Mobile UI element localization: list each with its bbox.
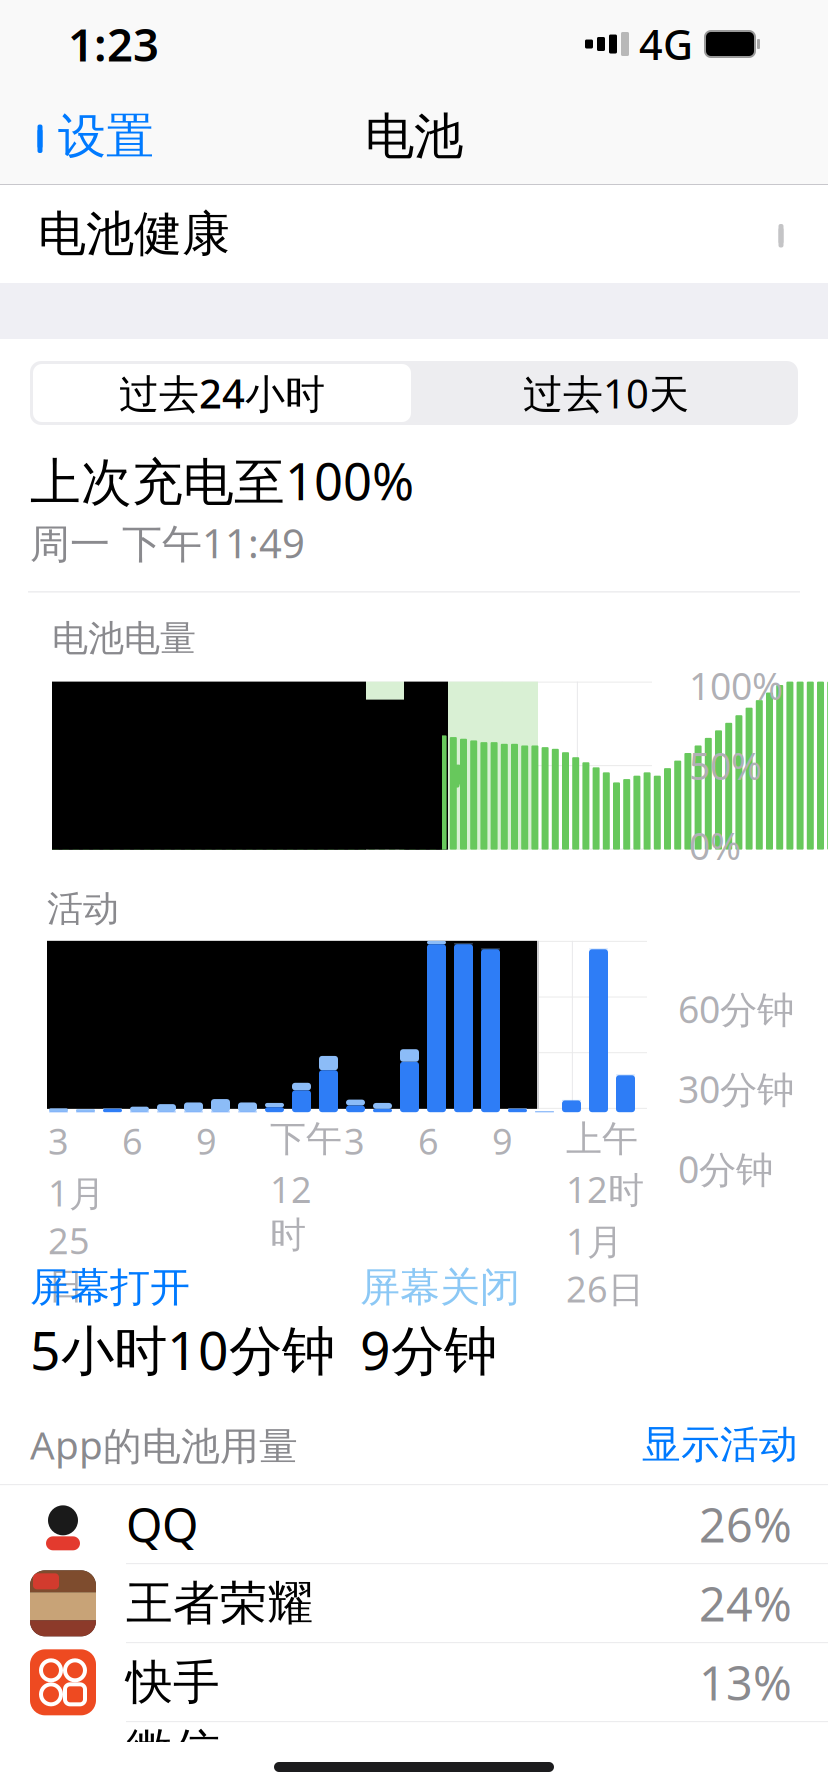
staticText: 0%: [689, 821, 741, 870]
button[interactable]: 过去10天: [414, 364, 798, 422]
button[interactable]: 屏幕关闭: [360, 1263, 520, 1312]
button[interactable]: 电池健康: [0, 185, 828, 283]
button[interactable]: 王者荣耀: [0, 1564, 828, 1642]
staticText: 电池健康: [38, 204, 230, 263]
staticText: 王者荣耀: [126, 1575, 314, 1632]
staticText: 30分钟: [678, 1064, 794, 1114]
staticText: 24%: [699, 1572, 792, 1634]
staticText: 电池电量: [52, 616, 196, 661]
staticText: App的电池用量: [30, 1419, 298, 1470]
staticText: 100%: [689, 661, 783, 710]
staticText: 12时: [270, 1165, 312, 1257]
staticText: 过去24小时: [119, 366, 325, 419]
button[interactable]: 过去24小时: [30, 361, 414, 425]
staticText: 9分钟: [360, 1314, 497, 1385]
staticText: 过去10天: [523, 366, 689, 419]
staticText: 26%: [699, 1493, 792, 1555]
staticText: 周一 下午11:49: [30, 516, 305, 569]
staticText: 屏幕打开: [30, 1263, 190, 1312]
button[interactable]: 快手: [0, 1643, 828, 1721]
staticText: 1月26日: [566, 1217, 644, 1312]
button[interactable]: 微信: [0, 1722, 828, 1792]
staticText: 4G: [639, 17, 693, 71]
staticText: 12时: [566, 1165, 644, 1213]
staticText: 显示活动: [642, 1421, 798, 1468]
button[interactable]: QQ: [0, 1485, 828, 1563]
staticText: 设置: [58, 107, 154, 166]
staticText: 电池: [365, 106, 463, 167]
staticText: 0分钟: [678, 1144, 773, 1194]
button[interactable]: 显示活动: [642, 1421, 798, 1468]
staticText: 下午: [270, 1117, 342, 1161]
staticText: 9: [196, 1117, 217, 1165]
staticText: 5小时10分钟: [30, 1314, 335, 1385]
staticText: 3: [48, 1117, 69, 1165]
staticText: 6: [418, 1117, 439, 1165]
staticText: 1:23: [68, 14, 159, 74]
staticText: 1月25日: [48, 1169, 105, 1308]
staticText: 3: [344, 1117, 365, 1165]
staticText: 活动: [47, 887, 119, 931]
staticText: 上次充电至100%: [30, 447, 414, 514]
button[interactable]: 设置: [10, 97, 174, 176]
staticText: 上午: [566, 1117, 638, 1161]
staticText: 6: [122, 1117, 143, 1165]
staticText: 50%: [689, 741, 762, 790]
staticText: 快手: [126, 1654, 220, 1711]
staticText: 9: [492, 1117, 513, 1165]
staticText: 60分钟: [678, 984, 794, 1034]
staticText: 微信: [126, 1722, 220, 1779]
staticText: 13%: [699, 1651, 792, 1713]
staticText: 屏幕关闭: [360, 1263, 520, 1312]
staticText: QQ: [126, 1493, 198, 1555]
button[interactable]: 屏幕打开: [30, 1263, 190, 1312]
